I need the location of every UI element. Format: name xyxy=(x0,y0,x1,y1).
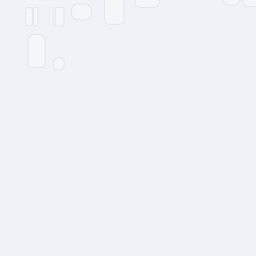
button[interactable]: Item 6 xyxy=(135,0,159,7)
button[interactable]: Item 9 xyxy=(28,34,45,67)
button[interactable]: Item 4 xyxy=(71,4,91,20)
button[interactable]: Item 7 xyxy=(223,0,240,5)
button[interactable]: Item 2 xyxy=(33,8,38,26)
button[interactable]: Item 5 xyxy=(104,0,124,24)
button[interactable]: Item 10 xyxy=(53,57,64,70)
button[interactable]: Item 8 xyxy=(243,0,256,7)
button[interactable]: Item 1 xyxy=(26,8,32,26)
button[interactable]: Item 3 xyxy=(55,7,64,26)
